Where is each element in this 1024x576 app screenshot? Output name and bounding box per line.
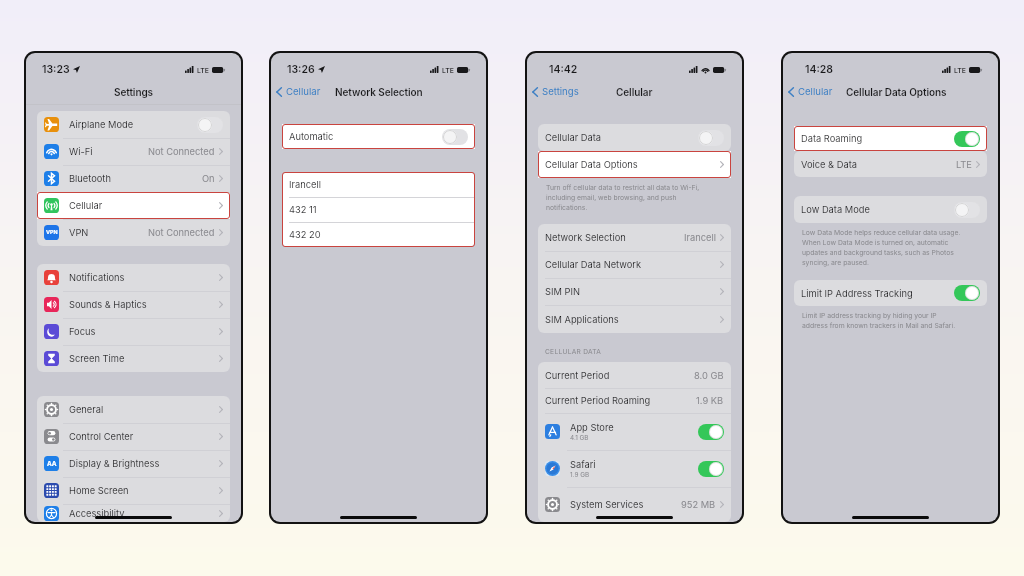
button[interactable]: Cellular	[787, 83, 834, 101]
button[interactable]: General	[37, 396, 230, 423]
button[interactable]: Automatic	[282, 124, 475, 149]
staticText: Accessibility	[69, 508, 125, 519]
button[interactable]: Toggle off	[197, 117, 223, 133]
staticText: Limit IP address tracking by hiding your…	[802, 311, 963, 330]
staticText: Cellular	[616, 86, 653, 98]
staticText: Screen Time	[69, 353, 125, 364]
button[interactable]: 432 11	[282, 197, 475, 222]
staticText: Display & Brightness	[69, 458, 160, 469]
button[interactable]: Accessibility	[37, 504, 230, 522]
staticText: Cellular	[798, 86, 833, 98]
staticText: 14:28	[805, 63, 834, 76]
button[interactable]: Current Period Roaming	[538, 388, 731, 413]
button[interactable]: App Store	[538, 413, 731, 450]
staticText: 1.9 GB	[570, 471, 590, 479]
button[interactable]: Current Period	[538, 362, 731, 388]
staticText: Low Data Mode helps reduce cellular data…	[802, 228, 963, 267]
button[interactable]: Cellular	[37, 192, 230, 219]
staticText: Automatic	[289, 131, 334, 142]
button[interactable]: Settings	[531, 83, 580, 101]
button[interactable]: Focus	[37, 318, 230, 345]
button[interactable]: System Services	[538, 487, 731, 522]
staticText: Low Data Mode	[801, 204, 870, 215]
staticText: Airplane Mode	[69, 119, 134, 130]
button[interactable]: Screen Time	[37, 345, 230, 372]
staticText: Not Connected	[148, 146, 215, 157]
button[interactable]: Airplane Mode	[37, 111, 230, 138]
button[interactable]: Sounds & Haptics	[37, 291, 230, 318]
button[interactable]: Cellular	[275, 83, 322, 101]
staticText: App Store	[570, 422, 614, 433]
button[interactable]: Irancell	[282, 172, 475, 197]
button[interactable]: Wi-Fi	[37, 138, 230, 165]
staticText: Settings	[114, 86, 154, 98]
button[interactable]: Cellular Data	[538, 124, 731, 151]
button[interactable]: Limit IP Address Tracking	[794, 280, 987, 306]
button[interactable]: Cellular Data Options	[538, 151, 731, 178]
button[interactable]: 432 20	[282, 222, 475, 247]
staticText: 13:23	[42, 63, 70, 76]
button[interactable]: Toggle on	[954, 285, 980, 301]
button[interactable]: AA	[37, 450, 230, 477]
staticText: 13:26	[287, 63, 315, 76]
staticText: Cellular	[69, 200, 103, 211]
button[interactable]: Network Selection	[538, 224, 731, 251]
button[interactable]: SIM PIN	[538, 278, 731, 305]
staticText: On	[202, 173, 215, 184]
staticText: LTE	[197, 66, 209, 74]
button[interactable]: Data Roaming	[794, 126, 987, 151]
button[interactable]: Safari	[538, 450, 731, 487]
staticText: Limit IP Address Tracking	[801, 288, 913, 299]
staticText: LTE	[956, 159, 972, 170]
staticText: Network Selection	[335, 86, 423, 98]
button[interactable]: Toggle off	[954, 202, 980, 218]
staticText: Cellular Data Options	[545, 159, 638, 170]
staticText: 952 MB	[681, 499, 716, 510]
staticText: 8.0 GB	[694, 370, 724, 381]
staticText: Safari	[570, 459, 596, 470]
staticText: Cellular	[286, 86, 321, 98]
button[interactable]: Toggle off	[698, 130, 724, 146]
button[interactable]: Notifications	[37, 264, 230, 291]
staticText: SIM PIN	[545, 286, 580, 297]
button[interactable]: Toggle on	[954, 131, 980, 147]
button[interactable]: Control Center	[37, 423, 230, 450]
staticText: Irancell	[289, 179, 321, 190]
staticText: Focus	[69, 326, 96, 337]
staticText: Notifications	[69, 272, 125, 283]
button[interactable]: Cellular Data Network	[538, 251, 731, 278]
button[interactable]: Toggle off	[442, 129, 468, 145]
staticText: CELLULAR DATA	[545, 348, 602, 356]
staticText: Cellular Data	[545, 132, 602, 143]
staticText: Not Connected	[148, 227, 215, 238]
staticText: System Services	[570, 499, 644, 510]
staticText: Sounds & Haptics	[69, 299, 147, 310]
staticText: SIM Applications	[545, 314, 619, 325]
staticText: Cellular Data Options	[846, 86, 947, 98]
staticText: 14:42	[549, 63, 578, 76]
button[interactable]: Voice & Data	[794, 151, 987, 177]
button[interactable]: Toggle on	[698, 424, 724, 440]
staticText: Control Center	[69, 431, 134, 442]
staticText: Bluetooth	[69, 173, 111, 184]
button[interactable]: SIM Applications	[538, 305, 731, 333]
staticText: 432 11	[289, 204, 317, 215]
staticText: 1.9 KB	[696, 395, 724, 406]
button[interactable]: VPN	[37, 219, 230, 246]
button[interactable]: Bluetooth	[37, 165, 230, 192]
staticText: General	[69, 404, 104, 415]
staticText: Home Screen	[69, 485, 129, 496]
staticText: Network Selection	[545, 232, 626, 243]
staticText: LTE	[442, 66, 454, 74]
staticText: AA	[47, 460, 57, 468]
staticText: VPN	[46, 229, 58, 236]
staticText: Turn off cellular data to restrict all d…	[546, 183, 707, 212]
button[interactable]: Home Screen	[37, 477, 230, 504]
button[interactable]: Low Data Mode	[794, 196, 987, 223]
staticText: Cellular Data Network	[545, 259, 642, 270]
button[interactable]: Toggle on	[698, 461, 724, 477]
staticText: Data Roaming	[801, 133, 863, 144]
staticText: 432 20	[289, 229, 321, 240]
staticText: Voice & Data	[801, 159, 857, 170]
staticText: Wi-Fi	[69, 146, 93, 157]
